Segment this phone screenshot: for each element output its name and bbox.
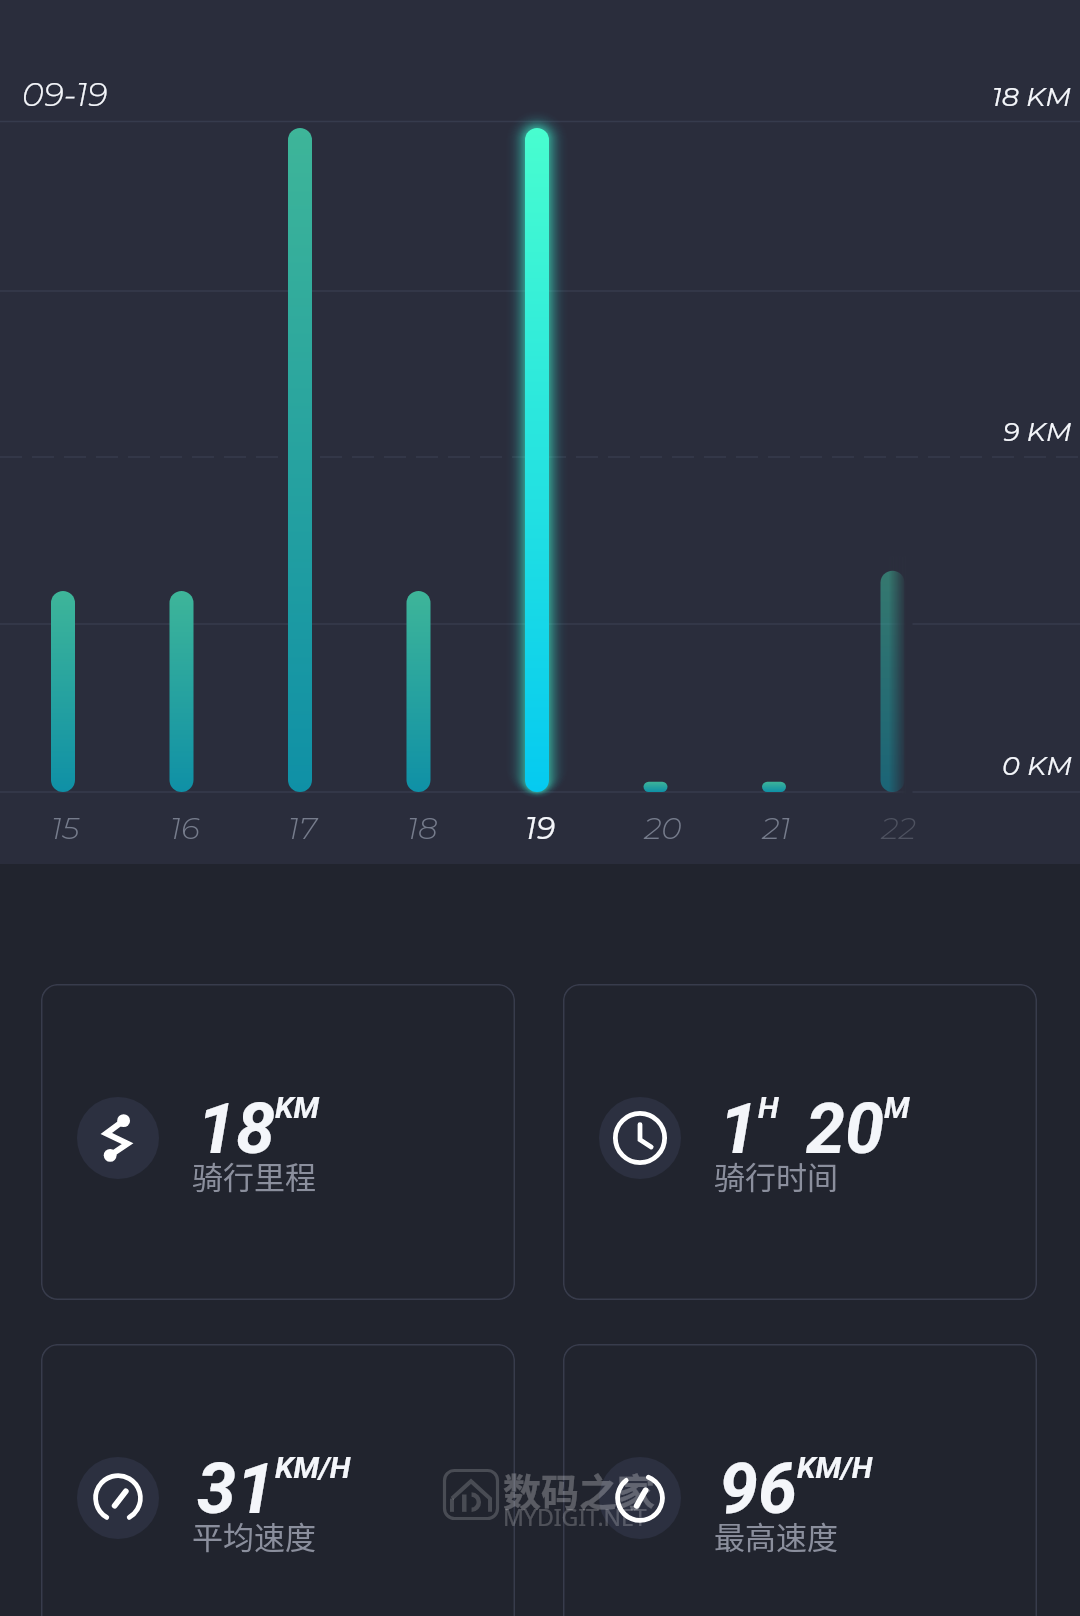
staticText: 数码之家 — [503, 1462, 656, 1517]
staticText: 09-19 — [22, 74, 108, 114]
staticText: 20 — [644, 809, 682, 847]
staticText: 18 — [407, 809, 438, 847]
staticText: 96 — [719, 1448, 797, 1530]
staticText: 1 — [719, 1088, 758, 1170]
staticText: 16 — [170, 809, 200, 847]
staticText: 20 — [806, 1088, 884, 1170]
staticText: 0 KM — [1002, 749, 1072, 782]
staticText: 31 — [197, 1448, 275, 1530]
staticText: 平均速度 — [192, 1513, 316, 1558]
staticText: 骑行里程 — [192, 1153, 316, 1198]
staticText: 9 KM — [1003, 415, 1072, 448]
staticText: 17 — [288, 809, 317, 847]
staticText: H — [758, 1090, 779, 1125]
staticText: 骑行时间 — [714, 1153, 838, 1198]
staticText: 22 — [881, 809, 916, 847]
staticText: 19 — [525, 809, 556, 847]
button[interactable]: 96 — [563, 1344, 1037, 1616]
staticText: 最高速度 — [714, 1513, 838, 1558]
button[interactable]: 31 — [41, 1344, 515, 1616]
staticText: KM/H — [275, 1450, 351, 1485]
staticText: 15 — [51, 809, 80, 847]
staticText: 21 — [762, 809, 791, 847]
staticText: 18 — [197, 1088, 275, 1170]
staticText: MYDIGIT.NET — [503, 1501, 647, 1532]
staticText: 18 KM — [992, 80, 1072, 113]
staticText: KM — [275, 1090, 319, 1125]
button[interactable]: 1 — [563, 984, 1037, 1300]
staticText: KM/H — [797, 1450, 873, 1485]
button[interactable]: 18 — [41, 984, 515, 1300]
staticText: M — [884, 1090, 910, 1125]
